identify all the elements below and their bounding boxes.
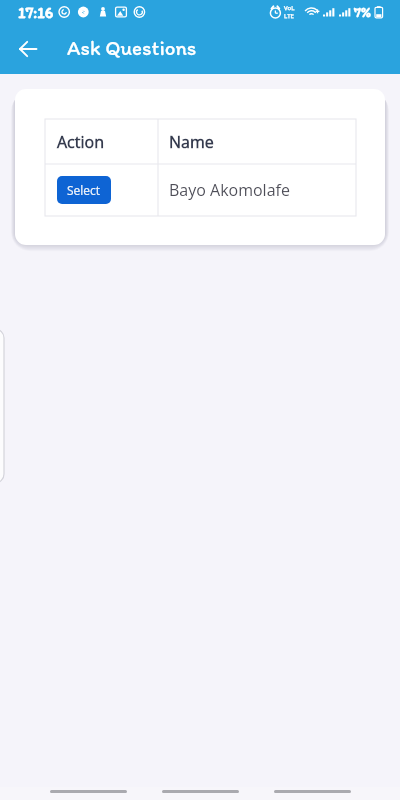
staticText: LTE [284,12,294,20]
staticText: Ask Questions [67,35,197,60]
button[interactable]: System navigation [274,787,351,796]
staticText: 7% [354,4,371,21]
button[interactable]: System navigation [50,787,127,796]
staticText: VoL [284,4,295,12]
staticText: Action [57,131,104,153]
staticText: 17:16 [18,3,54,22]
staticText: Bayo Akomolafe [169,179,290,201]
button[interactable]: Select [57,176,111,204]
button[interactable]: System navigation [162,787,239,796]
staticText: Select [67,182,101,198]
button[interactable]: Back [9,30,47,68]
staticText: Name [169,131,214,153]
